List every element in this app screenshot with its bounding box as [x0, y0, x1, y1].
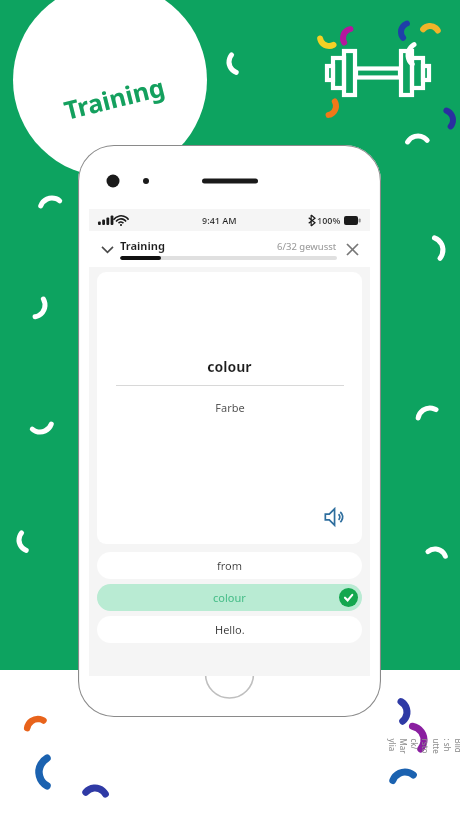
staticText: 9:41 AM [202, 214, 237, 226]
button[interactable]: Schließen [341, 238, 363, 260]
staticText: Farbe [215, 400, 245, 415]
button[interactable]: Aussprache anhören [322, 504, 348, 530]
button[interactable]: colour [97, 272, 362, 544]
staticText: Hello. [215, 622, 245, 637]
staticText: Training [60, 69, 169, 127]
button[interactable]: from [97, 552, 362, 579]
button[interactable]: Minimieren [96, 238, 118, 260]
staticText: Bild: shutterstock/Marylia [386, 738, 460, 754]
staticText: colour [213, 590, 246, 605]
button[interactable]: colour [97, 584, 362, 611]
staticText: from [217, 558, 243, 573]
staticText: Training [120, 238, 165, 253]
staticText: 6/32 gewusst [277, 240, 337, 253]
staticText: 100% [317, 214, 341, 226]
staticText: colour [207, 357, 252, 376]
button[interactable]: Hello. [97, 616, 362, 643]
